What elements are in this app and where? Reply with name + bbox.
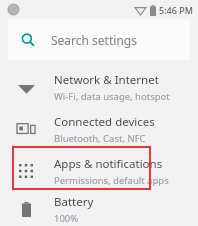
button[interactable]: Network and Internet bbox=[0, 66, 198, 108]
staticText: 5:46 PM bbox=[159, 4, 193, 16]
other: Apps and notifications bbox=[19, 164, 33, 178]
staticText: Battery bbox=[54, 194, 94, 210]
staticText: Bluetooth, Cast, NFC bbox=[54, 132, 146, 145]
staticText: Connected devices bbox=[54, 114, 155, 130]
staticText: Search settings bbox=[51, 32, 137, 48]
button[interactable]: Apps and notifications bbox=[0, 150, 198, 192]
staticText: Wi-Fi, data usage, hotspot bbox=[54, 90, 170, 103]
button[interactable]: Search settings bbox=[8, 19, 190, 60]
other: Connected devices bbox=[17, 122, 35, 136]
staticText: Network & Internet bbox=[54, 72, 159, 88]
button[interactable]: Connected devices bbox=[0, 108, 198, 150]
other: Battery bbox=[22, 202, 31, 217]
button[interactable]: Battery bbox=[0, 192, 198, 226]
staticText: Apps & notifications bbox=[54, 156, 163, 172]
staticText: 100% bbox=[54, 212, 79, 225]
staticText: Permissions, default apps bbox=[54, 174, 169, 187]
other: Network and Internet bbox=[18, 81, 35, 94]
